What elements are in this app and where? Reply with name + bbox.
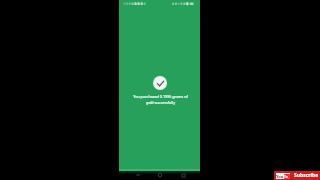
button[interactable]: Home	[156, 171, 164, 179]
staticText: Subscribe	[294, 172, 319, 179]
button[interactable]: You	[274, 171, 320, 180]
button[interactable]: Recent apps	[179, 171, 187, 179]
button[interactable]: Back	[134, 171, 142, 179]
staticText: You purchased 0.1996 grams of gold succe…	[120, 94, 201, 105]
staticText: Tube	[284, 174, 290, 179]
staticText: You	[276, 174, 284, 179]
